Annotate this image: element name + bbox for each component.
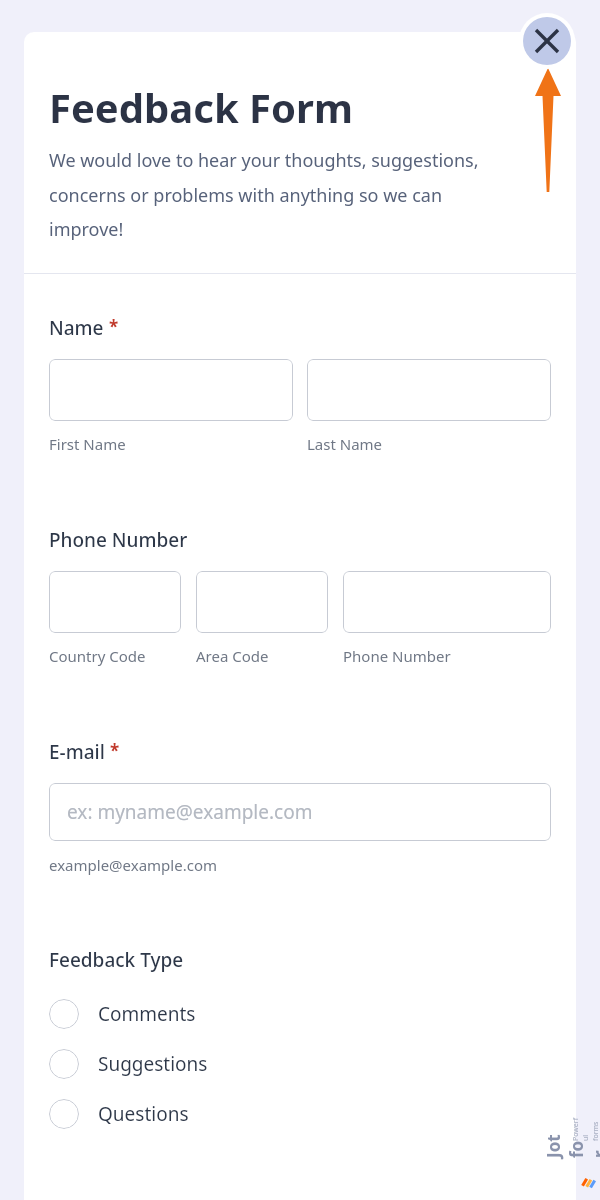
staticText: Questions — [98, 1101, 189, 1127]
button[interactable] — [196, 571, 328, 633]
staticText: Country Code — [49, 646, 181, 666]
staticText: Powerful forms get it done — [571, 1117, 600, 1141]
staticText: Phone Number — [49, 527, 188, 553]
button[interactable] — [307, 359, 551, 421]
staticText: Suggestions — [98, 1051, 208, 1077]
staticText: Feedback Form — [49, 80, 353, 134]
staticText: Area Code — [196, 646, 328, 666]
staticText: Comments — [98, 1001, 196, 1027]
staticText: We would love to hear your thoughts, sug… — [49, 148, 481, 241]
button[interactable] — [49, 359, 293, 421]
staticText: Jotform — [542, 1134, 600, 1158]
staticText: Name — [49, 315, 104, 341]
button[interactable]: Close — [523, 17, 571, 65]
staticText: Phone Number — [343, 646, 551, 666]
staticText: ex: myname@example.com — [67, 799, 313, 825]
button[interactable]: Jotform — [576, 1070, 600, 1200]
button[interactable]: Suggestions — [49, 1039, 551, 1089]
staticText: Last Name — [307, 434, 551, 454]
staticText: E-mail — [49, 739, 105, 765]
staticText: First Name — [49, 434, 293, 454]
staticText: Feedback Type — [49, 947, 184, 973]
button[interactable]: Questions — [49, 1089, 551, 1139]
button[interactable]: ex: myname@example.com — [49, 783, 551, 841]
staticText: * — [109, 315, 119, 338]
staticText: * — [110, 739, 120, 762]
button[interactable]: Comments — [49, 989, 551, 1039]
staticText: example@example.com — [49, 855, 217, 875]
button[interactable] — [49, 571, 181, 633]
button[interactable] — [343, 571, 551, 633]
